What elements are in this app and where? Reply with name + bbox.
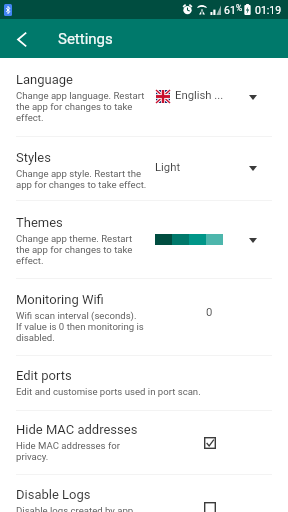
staticText: 01:19 bbox=[255, 4, 282, 16]
button[interactable]: Hide MAC addresses bbox=[0, 411, 288, 474]
staticText: Edit ports bbox=[16, 368, 72, 383]
staticText: Disable logs created by app. bbox=[16, 505, 136, 512]
staticText: English ... bbox=[175, 89, 224, 102]
staticText: Disable Logs bbox=[16, 487, 91, 502]
staticText: Wifi scan interval (seconds). If value i… bbox=[16, 310, 144, 343]
staticText: Change app theme. Restart the app for ch… bbox=[16, 233, 133, 266]
staticText: Light bbox=[155, 161, 181, 174]
staticText: Hide MAC addresses bbox=[16, 422, 138, 437]
button[interactable]: Styles bbox=[0, 137, 288, 200]
staticText: Change app style. Restart the app for ch… bbox=[16, 168, 147, 190]
button[interactable]: Edit ports bbox=[0, 356, 288, 410]
button[interactable]: Navigate up bbox=[4, 21, 40, 57]
staticText: 0 bbox=[206, 306, 213, 319]
staticText: Edit and customise ports used in port sc… bbox=[16, 386, 201, 397]
staticText: Themes bbox=[16, 215, 63, 230]
staticText: Language bbox=[16, 72, 73, 87]
button[interactable]: Themes bbox=[0, 201, 288, 278]
staticText: Monitoring Wifi bbox=[16, 292, 104, 307]
button[interactable]: Monitoring Wifi bbox=[0, 279, 288, 355]
button[interactable]: Language bbox=[0, 58, 288, 136]
staticText: % bbox=[236, 3, 243, 13]
staticText: Settings bbox=[58, 30, 113, 48]
staticText: Hide MAC addresses for privacy. bbox=[16, 440, 121, 462]
staticText: Styles bbox=[16, 150, 51, 165]
staticText: 61 bbox=[224, 4, 236, 16]
staticText: Change app language. Restart the app for… bbox=[16, 90, 145, 123]
button[interactable]: Disable Logs bbox=[0, 475, 288, 512]
